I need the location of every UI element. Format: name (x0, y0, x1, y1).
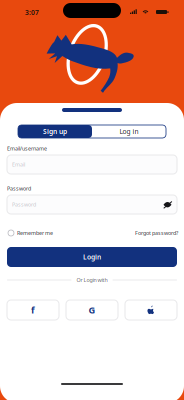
button[interactable]: Login (7, 247, 177, 267)
button[interactable]: Sign in with Google (66, 300, 118, 320)
staticText: Password (7, 185, 31, 192)
staticText: Remember me (17, 229, 53, 237)
staticText: f (31, 304, 35, 316)
staticText: Or Login with (76, 276, 107, 284)
button[interactable]: Remember me (8, 228, 53, 238)
staticText: Sign up (43, 127, 67, 136)
staticText: G (88, 304, 95, 316)
staticText: 3:07 (25, 8, 39, 17)
staticText: Email (12, 161, 25, 168)
staticText: Login (83, 253, 101, 261)
staticText: Email/username (7, 145, 47, 152)
button[interactable]: Sign up (18, 125, 92, 138)
button[interactable]: Sign in with Facebook (7, 300, 59, 320)
button[interactable]: Sign in with Apple (125, 300, 177, 320)
staticText: Forgot password? (135, 229, 178, 237)
staticText: Log in (119, 127, 138, 136)
button[interactable]: Forgot password? (135, 228, 178, 238)
staticText: Password (12, 201, 36, 208)
button[interactable]: Log in (92, 125, 166, 138)
